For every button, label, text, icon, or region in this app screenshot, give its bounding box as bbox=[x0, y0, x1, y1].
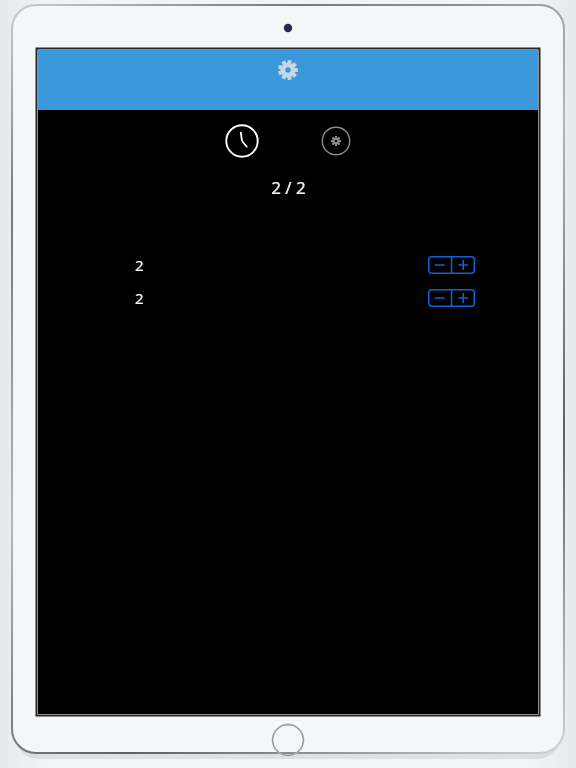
button[interactable]: 2 bbox=[135, 255, 475, 275]
button[interactable]: 2 bbox=[135, 288, 475, 308]
button[interactable]: Timer mode bbox=[225, 124, 259, 158]
staticText: 2 bbox=[135, 288, 144, 308]
staticText: 2 / 2 bbox=[271, 176, 306, 199]
button[interactable]: Settings mode bbox=[321, 126, 351, 156]
button[interactable]: Increase bbox=[451, 256, 475, 274]
staticText: 2 bbox=[135, 255, 144, 275]
button[interactable]: Increase bbox=[451, 289, 475, 307]
button[interactable]: Decrease bbox=[428, 289, 451, 307]
button[interactable]: Decrease bbox=[428, 256, 451, 274]
button[interactable]: Settings bbox=[277, 59, 299, 81]
button[interactable]: Settings bbox=[38, 50, 538, 110]
